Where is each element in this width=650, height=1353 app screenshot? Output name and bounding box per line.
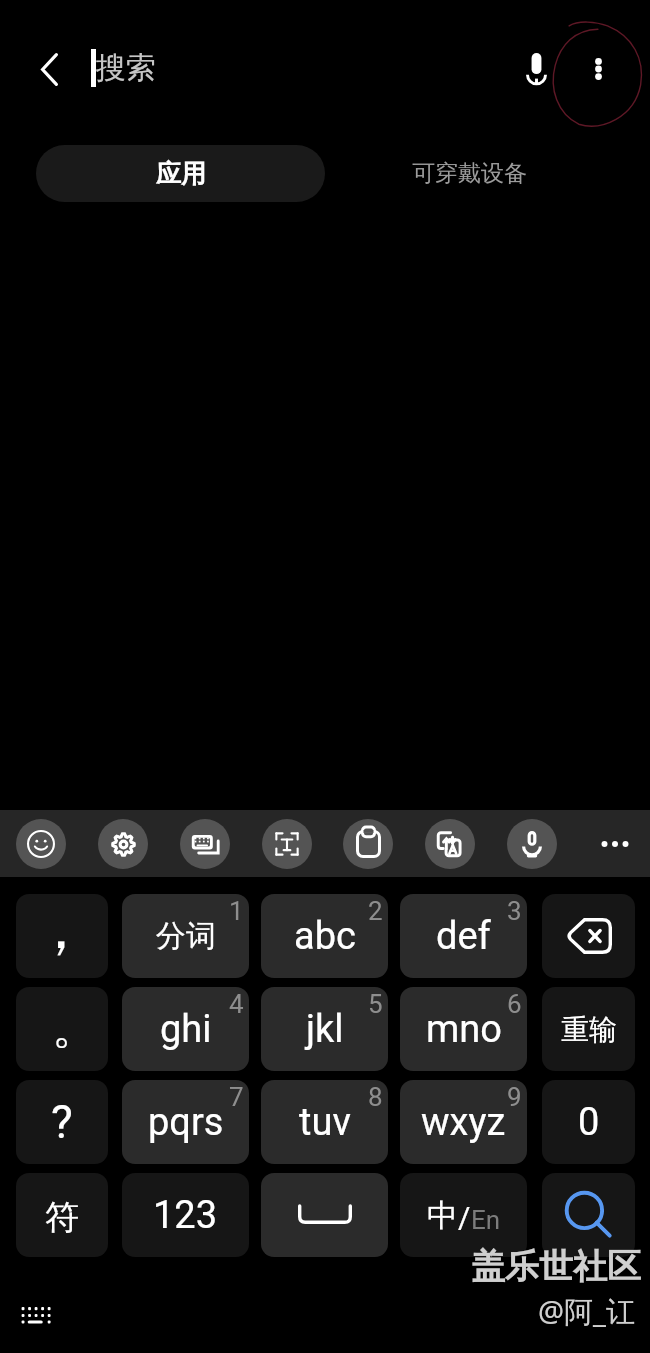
- button[interactable]: ?: [16, 1080, 108, 1164]
- staticText: ，: [33, 894, 89, 965]
- staticText: 7: [229, 1082, 244, 1112]
- button[interactable]: Settings: [98, 819, 148, 869]
- staticText: 盖乐世社区: [471, 1245, 641, 1288]
- button[interactable]: jkl: [261, 987, 388, 1071]
- staticText: 2: [368, 896, 383, 926]
- staticText: 3: [507, 896, 522, 926]
- button[interactable]: Voice input: [507, 819, 557, 869]
- staticText: 中: [427, 1196, 458, 1235]
- button[interactable]: 可穿戴设备: [325, 145, 614, 202]
- button[interactable]: 重输: [542, 987, 635, 1071]
- button[interactable]: Back: [24, 44, 74, 94]
- button[interactable]: 中: [400, 1173, 527, 1257]
- staticText: 符: [45, 1196, 79, 1239]
- staticText: 分词: [156, 917, 216, 955]
- button[interactable]: Voice search: [510, 43, 562, 95]
- button[interactable]: ，: [16, 894, 108, 978]
- button[interactable]: Search: [542, 1173, 635, 1257]
- button[interactable]: Hide keyboard: [11, 1291, 59, 1339]
- staticText: mno: [426, 1007, 502, 1052]
- staticText: En: [471, 1205, 501, 1235]
- button[interactable]: 符: [16, 1173, 108, 1257]
- button[interactable]: Space: [261, 1173, 388, 1257]
- button[interactable]: 0: [542, 1080, 635, 1164]
- staticText: 。: [52, 999, 98, 1057]
- button[interactable]: Clipboard: [343, 819, 393, 869]
- staticText: pqrs: [148, 1100, 224, 1145]
- button[interactable]: Emoji: [16, 819, 66, 869]
- button[interactable]: tuv: [261, 1080, 388, 1164]
- staticText: 123: [153, 1193, 218, 1238]
- staticText: jkl: [306, 1007, 344, 1052]
- staticText: 0: [578, 1100, 600, 1145]
- button[interactable]: 123: [122, 1173, 249, 1257]
- button[interactable]: abc: [261, 894, 388, 978]
- button[interactable]: More: [589, 818, 641, 870]
- button[interactable]: 应用: [36, 145, 325, 202]
- staticText: 8: [368, 1082, 383, 1112]
- staticText: /: [458, 1200, 471, 1235]
- button[interactable]: mno: [400, 987, 527, 1071]
- staticText: tuv: [299, 1100, 351, 1145]
- staticText: 重输: [561, 1012, 617, 1047]
- staticText: wxyz: [421, 1100, 506, 1145]
- other: Search: [566, 1192, 612, 1238]
- staticText: 可穿戴设备: [412, 159, 527, 188]
- button[interactable]: 。: [16, 987, 108, 1071]
- button[interactable]: Text recognition: [262, 819, 312, 869]
- button[interactable]: pqrs: [122, 1080, 249, 1164]
- other: Space: [298, 1206, 352, 1224]
- button[interactable]: More options: [572, 43, 624, 95]
- staticText: 应用: [156, 158, 206, 189]
- button[interactable]: Backspace: [542, 894, 635, 978]
- staticText: 4: [229, 989, 244, 1019]
- staticText: ?: [51, 1095, 73, 1149]
- staticText: 9: [507, 1082, 522, 1112]
- button[interactable]: 分词: [122, 894, 249, 978]
- staticText: abc: [294, 914, 356, 959]
- staticText: ghi: [160, 1007, 212, 1052]
- staticText: @阿_讧: [538, 1291, 635, 1331]
- staticText: 1: [229, 896, 244, 926]
- button[interactable]: wxyz: [400, 1080, 527, 1164]
- staticText: 5: [368, 989, 383, 1019]
- button[interactable]: Translate: [425, 819, 475, 869]
- staticText: 6: [507, 989, 522, 1019]
- button[interactable]: Keyboard layout: [180, 819, 230, 869]
- button[interactable]: ghi: [122, 987, 249, 1071]
- staticText: def: [436, 914, 491, 959]
- staticText: 搜索: [96, 49, 156, 87]
- other: Backspace: [566, 918, 612, 954]
- button[interactable]: def: [400, 894, 527, 978]
